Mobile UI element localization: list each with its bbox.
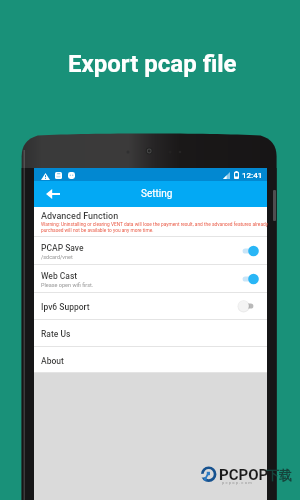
staticText: 12:41 (242, 171, 263, 180)
button[interactable]: About (34, 347, 267, 372)
button[interactable]: Toggle off (238, 298, 259, 314)
button[interactable]: Back (44, 185, 62, 203)
staticText: About (41, 356, 64, 366)
staticText: pcpop.com (222, 480, 253, 485)
button[interactable]: Toggle on (238, 243, 259, 259)
staticText: PCPOP (219, 466, 269, 484)
staticText: Please open wifi first. (41, 282, 94, 288)
button[interactable]: Ipv6 Support (34, 293, 267, 319)
staticText: PCAP Save (41, 243, 84, 253)
button[interactable]: PCAP Save (34, 237, 267, 264)
staticText: /sdcard/vnet (41, 254, 73, 260)
staticText: Web Cast (41, 271, 78, 281)
staticText: Rate Us (41, 329, 71, 339)
staticText: Setting (141, 188, 173, 200)
staticText: Ipv6 Support (41, 302, 90, 312)
staticText: Warning: Uninstalling or clearing VENT d… (41, 222, 270, 233)
staticText: 下载 (266, 467, 292, 483)
staticText: Export pcap file (68, 50, 237, 78)
button[interactable]: Web Cast (34, 265, 267, 292)
button[interactable]: Rate Us (34, 320, 267, 346)
button[interactable]: Toggle on (238, 271, 259, 287)
staticText: Advanced Function (41, 211, 119, 222)
